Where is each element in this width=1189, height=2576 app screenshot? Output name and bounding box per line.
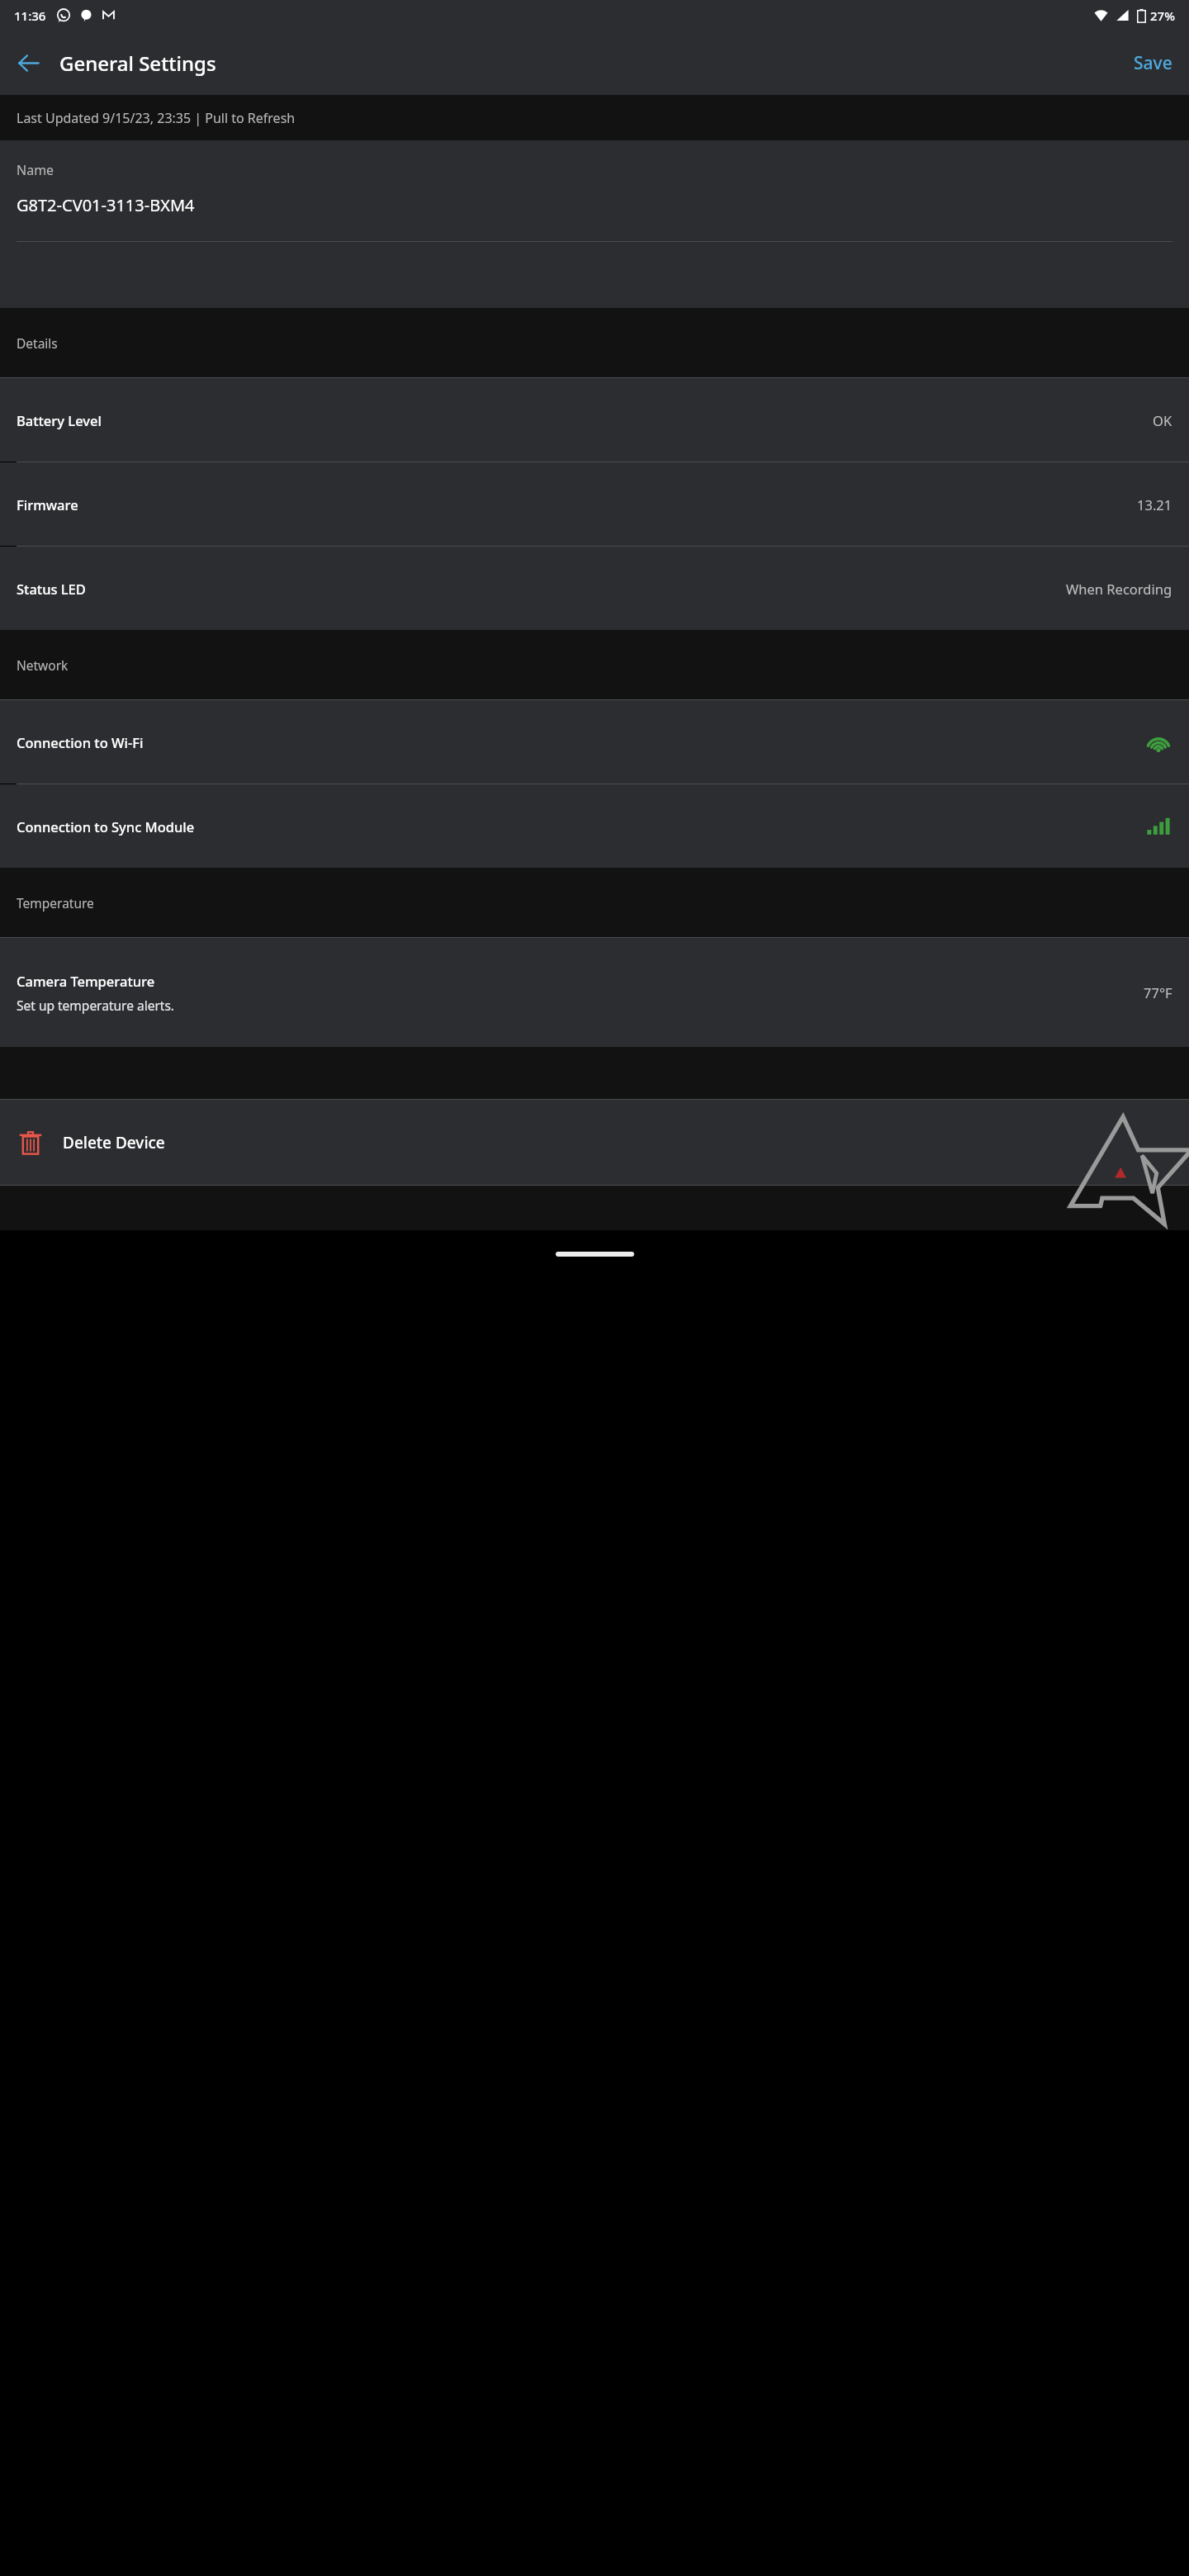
button[interactable]: Last Updated 9/15/23, 23:35 | Pull to Re… — [0, 95, 1189, 140]
staticText: Temperature — [17, 894, 94, 912]
staticText: When Recording — [1066, 580, 1172, 598]
button[interactable]: Save — [1117, 31, 1189, 95]
staticText: Name — [17, 161, 54, 179]
staticText: Network — [17, 656, 69, 674]
button[interactable]: Camera Temperature — [0, 938, 1189, 1047]
staticText: G8T2-CV01-3113-BXM4 — [17, 194, 195, 216]
staticText: Save — [1134, 51, 1172, 75]
staticText: Connection to Sync Module — [17, 817, 195, 836]
staticText: Firmware — [17, 495, 78, 514]
button[interactable]: Connection to Wi-Fi — [0, 700, 1189, 784]
staticText: Set up temperature alerts. — [17, 997, 174, 1014]
staticText: Last Updated 9/15/23, 23:35 | Pull to Re… — [17, 109, 296, 127]
staticText: Details — [17, 334, 58, 352]
button[interactable]: Name — [0, 140, 1189, 308]
staticText: 27% — [1150, 7, 1175, 24]
button[interactable]: Connection to Sync Module — [0, 784, 1189, 868]
staticText: Delete Device — [63, 1132, 165, 1153]
staticText: Connection to Wi-Fi — [17, 733, 144, 751]
staticText: Status LED — [17, 580, 86, 598]
staticText: 77°F — [1144, 983, 1172, 1002]
staticText: 13.21 — [1137, 495, 1172, 514]
button[interactable]: Status LED — [0, 547, 1189, 630]
staticText: Battery Level — [17, 411, 102, 429]
button[interactable]: Back — [7, 41, 50, 84]
staticText: OK — [1153, 411, 1172, 429]
button[interactable]: Delete Device — [0, 1100, 1189, 1185]
staticText: 11:36 — [14, 7, 46, 24]
button[interactable]: Firmware — [0, 462, 1189, 546]
staticText: Camera Temperature — [17, 972, 155, 990]
button[interactable]: Battery Level — [0, 378, 1189, 462]
staticText: General Settings — [59, 50, 216, 77]
